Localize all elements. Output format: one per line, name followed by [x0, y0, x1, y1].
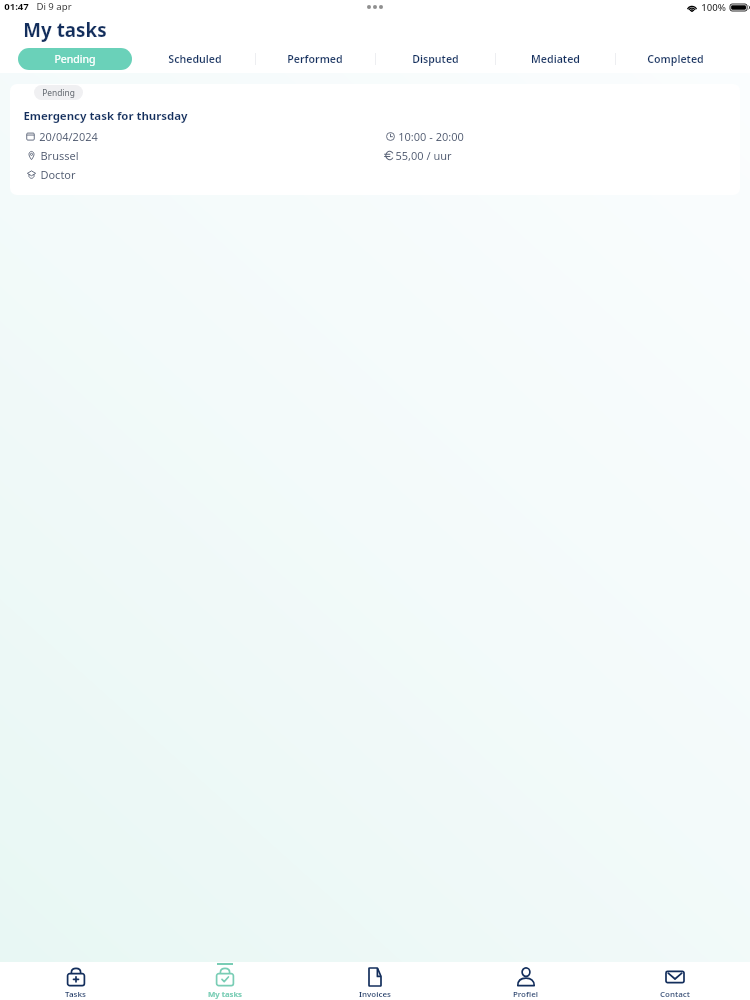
staticText: Scheduled [168, 52, 222, 66]
button[interactable]: Disputed [412, 52, 459, 66]
staticText: 20/04/2024 [39, 129, 98, 144]
button[interactable]: Invoices [300, 962, 450, 1000]
staticText: Profiel [513, 989, 538, 1000]
staticText: Brussel [40, 148, 79, 163]
button[interactable]: Pending [18, 48, 132, 70]
staticText: Pending [42, 87, 75, 98]
button[interactable]: Scheduled [168, 52, 222, 66]
staticText: 55,00 / uur [395, 148, 452, 163]
button[interactable]: Mediated [531, 52, 580, 66]
staticText: Completed [647, 52, 704, 66]
button[interactable]: Contact [600, 962, 750, 1000]
button[interactable]: My tasks [150, 962, 300, 1000]
staticText: Mediated [531, 52, 580, 66]
staticText: My tasks [208, 989, 242, 1000]
staticText: Doctor [40, 167, 76, 182]
staticText: Invoices [359, 989, 391, 1000]
button[interactable]: Profiel [450, 962, 600, 1000]
staticText: My tasks [23, 17, 107, 43]
staticText: 01:47 [4, 0, 29, 13]
staticText: 10:00 - 20:00 [398, 129, 464, 144]
staticText: Contact [660, 989, 690, 1000]
staticText: Di 9 apr [36, 0, 72, 13]
button[interactable]: Pending [10, 84, 740, 195]
staticText: Disputed [412, 52, 459, 66]
button[interactable]: Completed [647, 52, 704, 66]
staticText: Pending [54, 52, 96, 66]
staticText: Emergency task for thursday [23, 108, 188, 124]
staticText: Performed [287, 52, 343, 66]
staticText: Tasks [65, 989, 86, 1000]
button[interactable]: Performed [287, 52, 343, 66]
staticText: 100% [701, 1, 726, 14]
button[interactable]: Tasks [0, 962, 150, 1000]
